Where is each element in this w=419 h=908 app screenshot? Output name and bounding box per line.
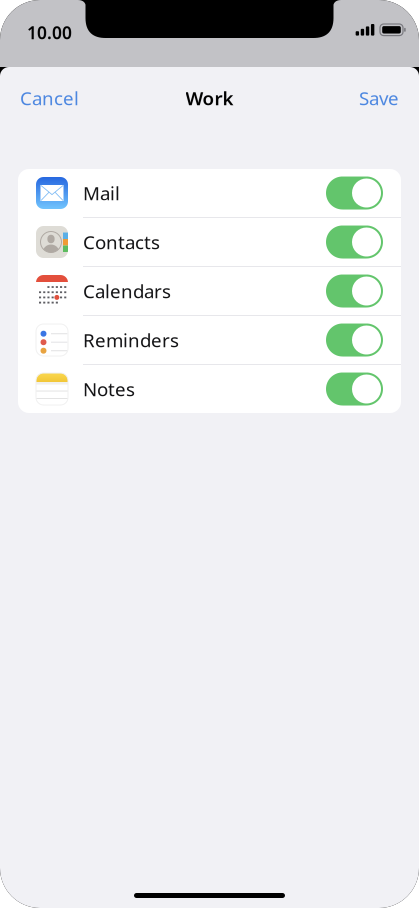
staticText: Reminders (83, 328, 179, 352)
button[interactable]: Calendars (326, 274, 383, 307)
staticText: 10.00 (27, 21, 72, 44)
staticText: Work (185, 86, 233, 110)
button[interactable]: Save (353, 80, 405, 116)
button[interactable]: Cancel (14, 80, 85, 116)
staticText: Cancel (20, 86, 79, 110)
button[interactable]: Notes (326, 372, 383, 405)
staticText: Notes (83, 377, 135, 401)
staticText: Calendars (83, 279, 171, 303)
button[interactable]: Mail (326, 176, 383, 209)
button[interactable]: Reminders (326, 323, 383, 356)
button[interactable]: Contacts (326, 225, 383, 258)
staticText: Contacts (83, 230, 160, 254)
staticText: Mail (83, 181, 120, 205)
staticText: Save (359, 86, 399, 110)
